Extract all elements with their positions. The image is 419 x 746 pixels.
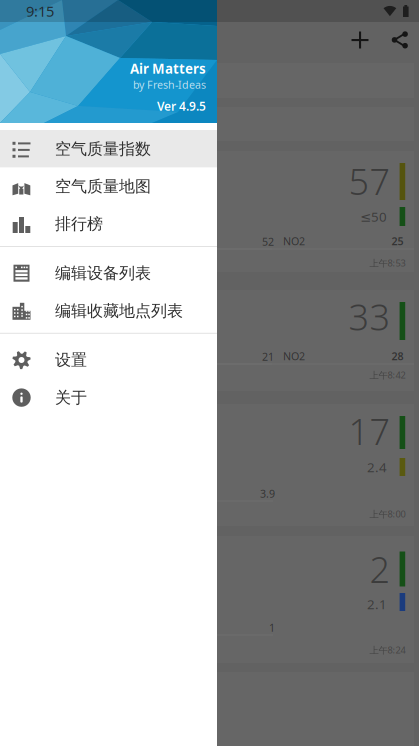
staticText: 1 bbox=[269, 620, 275, 635]
staticText: 52 bbox=[262, 234, 274, 249]
staticText: 3.9 bbox=[260, 486, 275, 501]
button[interactable]: 关于 bbox=[0, 379, 217, 416]
staticText: NO2 bbox=[283, 234, 305, 248]
staticText: 上午8:00 bbox=[369, 508, 405, 520]
button[interactable]: 设置 bbox=[0, 341, 217, 379]
staticText: 空气质量指数 bbox=[55, 139, 151, 159]
button[interactable]: 排行榜 bbox=[0, 205, 217, 243]
staticText: 后台定位权限已被禁用。 bbox=[3, 116, 146, 132]
staticText: 排行榜 bbox=[55, 214, 103, 234]
staticText: 设置 bbox=[55, 350, 87, 370]
staticText: 57 bbox=[348, 157, 390, 205]
staticText: 编辑设备列表 bbox=[55, 263, 151, 283]
staticText: 本应用需要获取位置权限 bbox=[3, 72, 146, 89]
staticText: 上午8:42 bbox=[369, 369, 405, 381]
staticText: 17 bbox=[348, 407, 390, 455]
staticText: 9:15 bbox=[26, 1, 54, 21]
staticText: Ver 4.9.5 bbox=[157, 98, 206, 114]
staticText: 2.4 bbox=[367, 458, 387, 476]
button[interactable]: 空气质量指数 bbox=[0, 130, 217, 168]
staticText: 33 bbox=[348, 293, 390, 340]
staticText: 上午8:24 bbox=[369, 644, 405, 656]
button[interactable]: 空气质量地图 bbox=[0, 168, 217, 205]
staticText: 2.1 bbox=[367, 595, 387, 613]
staticText: Air Matters bbox=[130, 60, 206, 77]
staticText: 25 bbox=[391, 234, 403, 248]
staticText: 2 bbox=[369, 545, 390, 593]
staticText: ≤50 bbox=[360, 208, 387, 225]
button[interactable]: 编辑设备列表 bbox=[0, 254, 217, 292]
staticText: 上午8:53 bbox=[369, 257, 405, 269]
staticText: 28 bbox=[391, 349, 403, 363]
button[interactable]: 编辑收藏地点列表 bbox=[0, 292, 217, 330]
staticText: 编辑收藏地点列表 bbox=[55, 301, 183, 321]
staticText: 空气质量地图 bbox=[55, 177, 151, 196]
staticText: 21 bbox=[262, 349, 274, 364]
staticText: by Fresh-Ideas bbox=[133, 77, 206, 92]
staticText: 关于 bbox=[55, 388, 87, 407]
staticText: NO2 bbox=[283, 349, 305, 363]
